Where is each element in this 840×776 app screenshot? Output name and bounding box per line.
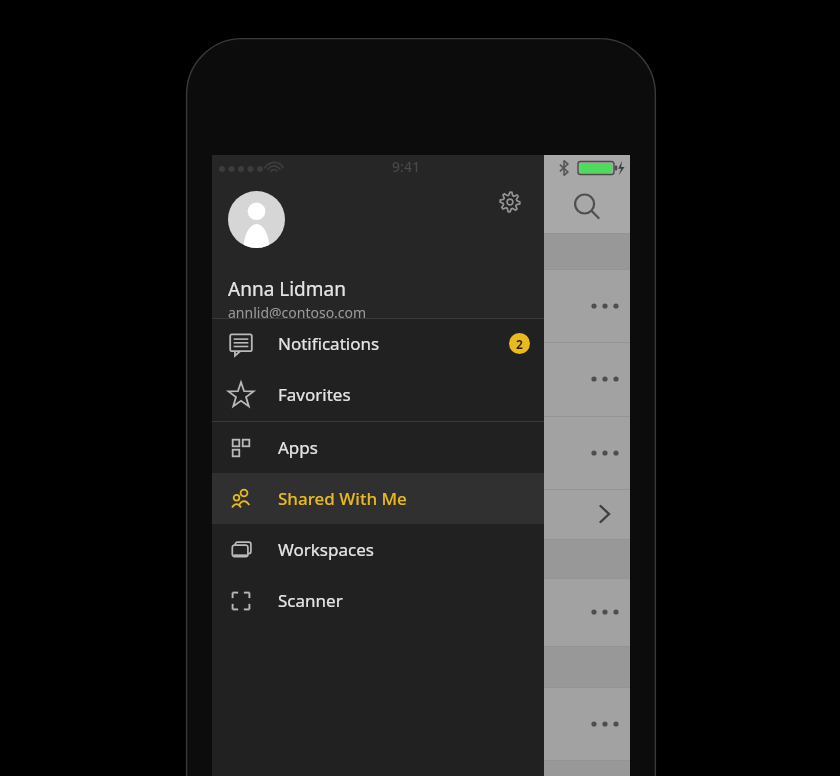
staticText: Apps (278, 436, 318, 459)
staticText: Anna Lidman (228, 276, 346, 302)
staticText: Scanner (278, 589, 343, 612)
button[interactable]: More options (544, 416, 630, 489)
staticText: Notifications (278, 332, 380, 355)
staticText: 2 (516, 336, 523, 352)
button[interactable]: Open (544, 489, 630, 539)
button[interactable]: Scanner (212, 575, 544, 626)
button[interactable]: Workspaces (212, 524, 544, 575)
button[interactable]: Apps (212, 422, 544, 473)
button[interactable]: More options (544, 342, 630, 416)
staticText: Workspaces (278, 538, 374, 561)
staticText: annlid@contoso.com (228, 303, 367, 322)
button[interactable]: Settings (494, 186, 526, 218)
button[interactable]: Shared With Me (212, 473, 544, 524)
button[interactable]: More options (544, 578, 630, 646)
button[interactable]: Notifications (212, 318, 544, 369)
button[interactable]: Search (544, 180, 630, 233)
button[interactable]: Profile photo (228, 191, 285, 248)
staticText: Shared With Me (278, 487, 407, 510)
button[interactable]: More options (544, 269, 630, 342)
staticText: 9:41 (392, 157, 420, 176)
button[interactable]: Favorites (212, 369, 544, 420)
button[interactable]: More options (544, 687, 630, 760)
staticText: Favorites (278, 383, 351, 406)
